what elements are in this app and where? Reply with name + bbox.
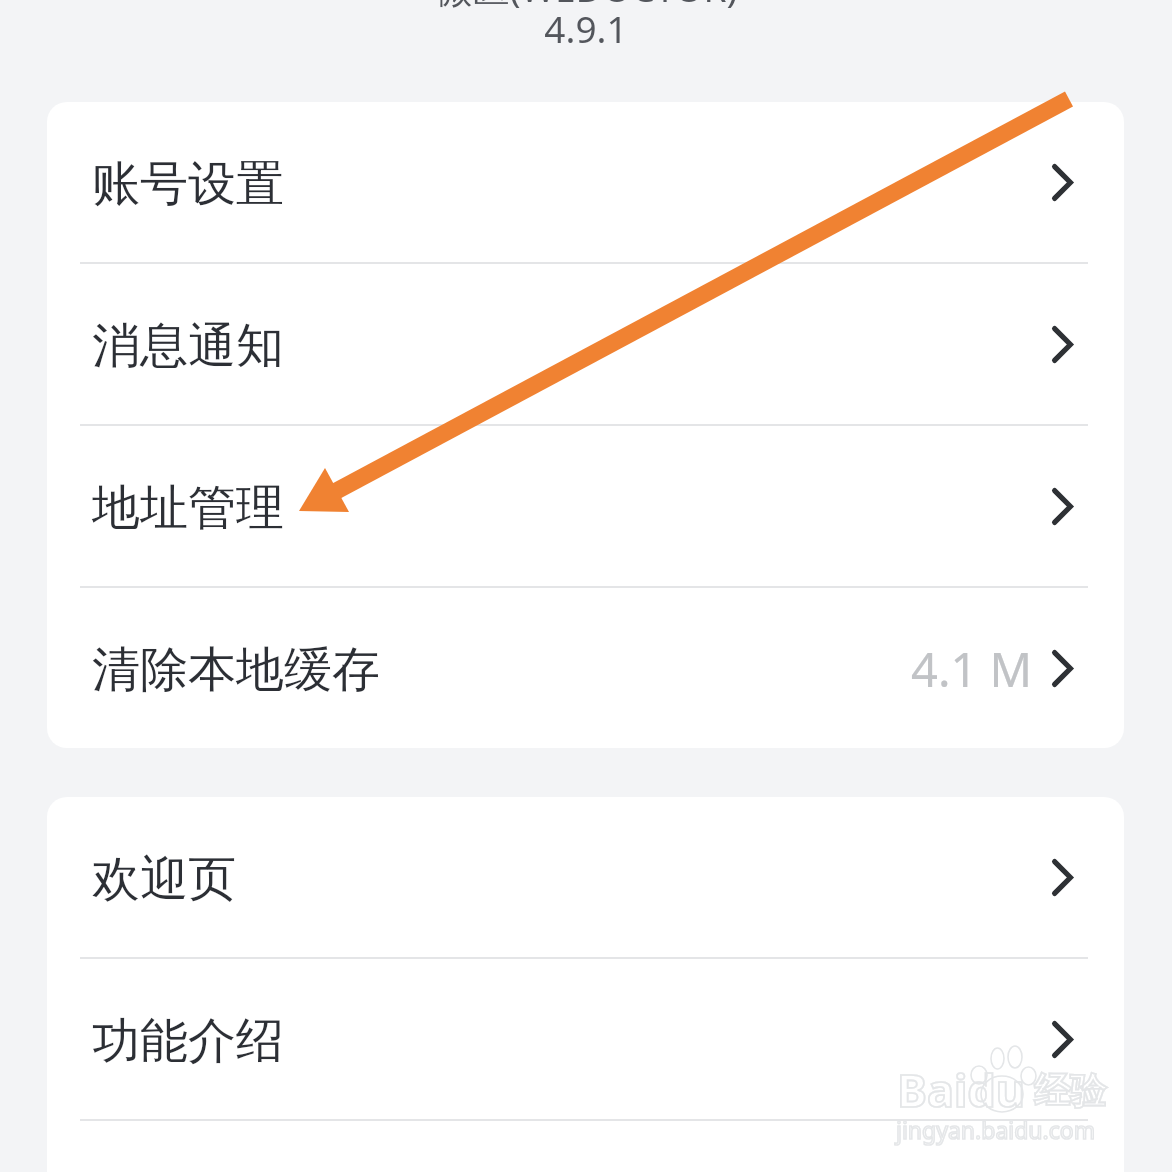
button[interactable]: 地址管理 (47, 426, 1124, 586)
button[interactable]: 功能介绍 (47, 959, 1124, 1119)
staticText: 清除本地缓存 (92, 640, 380, 700)
button[interactable]: 清除本地缓存 (47, 588, 1124, 748)
button[interactable]: 关于我们 (47, 1121, 1124, 1172)
staticText: 4.1 M (911, 637, 1033, 701)
other: Open 账号设置 (1052, 164, 1073, 201)
staticText: 地址管理 (92, 478, 284, 538)
other: Open 清除本地缓存 (1052, 650, 1073, 687)
button[interactable]: 消息通知 (47, 264, 1124, 424)
other: Open 消息通知 (1052, 326, 1073, 363)
staticText: 4.9.1 (544, 3, 628, 53)
other: Open 欢迎页 (1052, 859, 1073, 896)
staticText: 消息通知 (92, 316, 284, 376)
other: Open 功能介绍 (1052, 1021, 1073, 1058)
staticText: 账号设置 (92, 154, 284, 214)
staticText: 功能介绍 (92, 1011, 284, 1071)
staticText: 欢迎页 (92, 849, 236, 909)
staticText: 微医(WEDOCTOR) (435, 0, 738, 13)
button[interactable]: 欢迎页 (47, 797, 1124, 957)
other: Open 地址管理 (1052, 488, 1073, 525)
button[interactable]: 账号设置 (47, 102, 1124, 262)
